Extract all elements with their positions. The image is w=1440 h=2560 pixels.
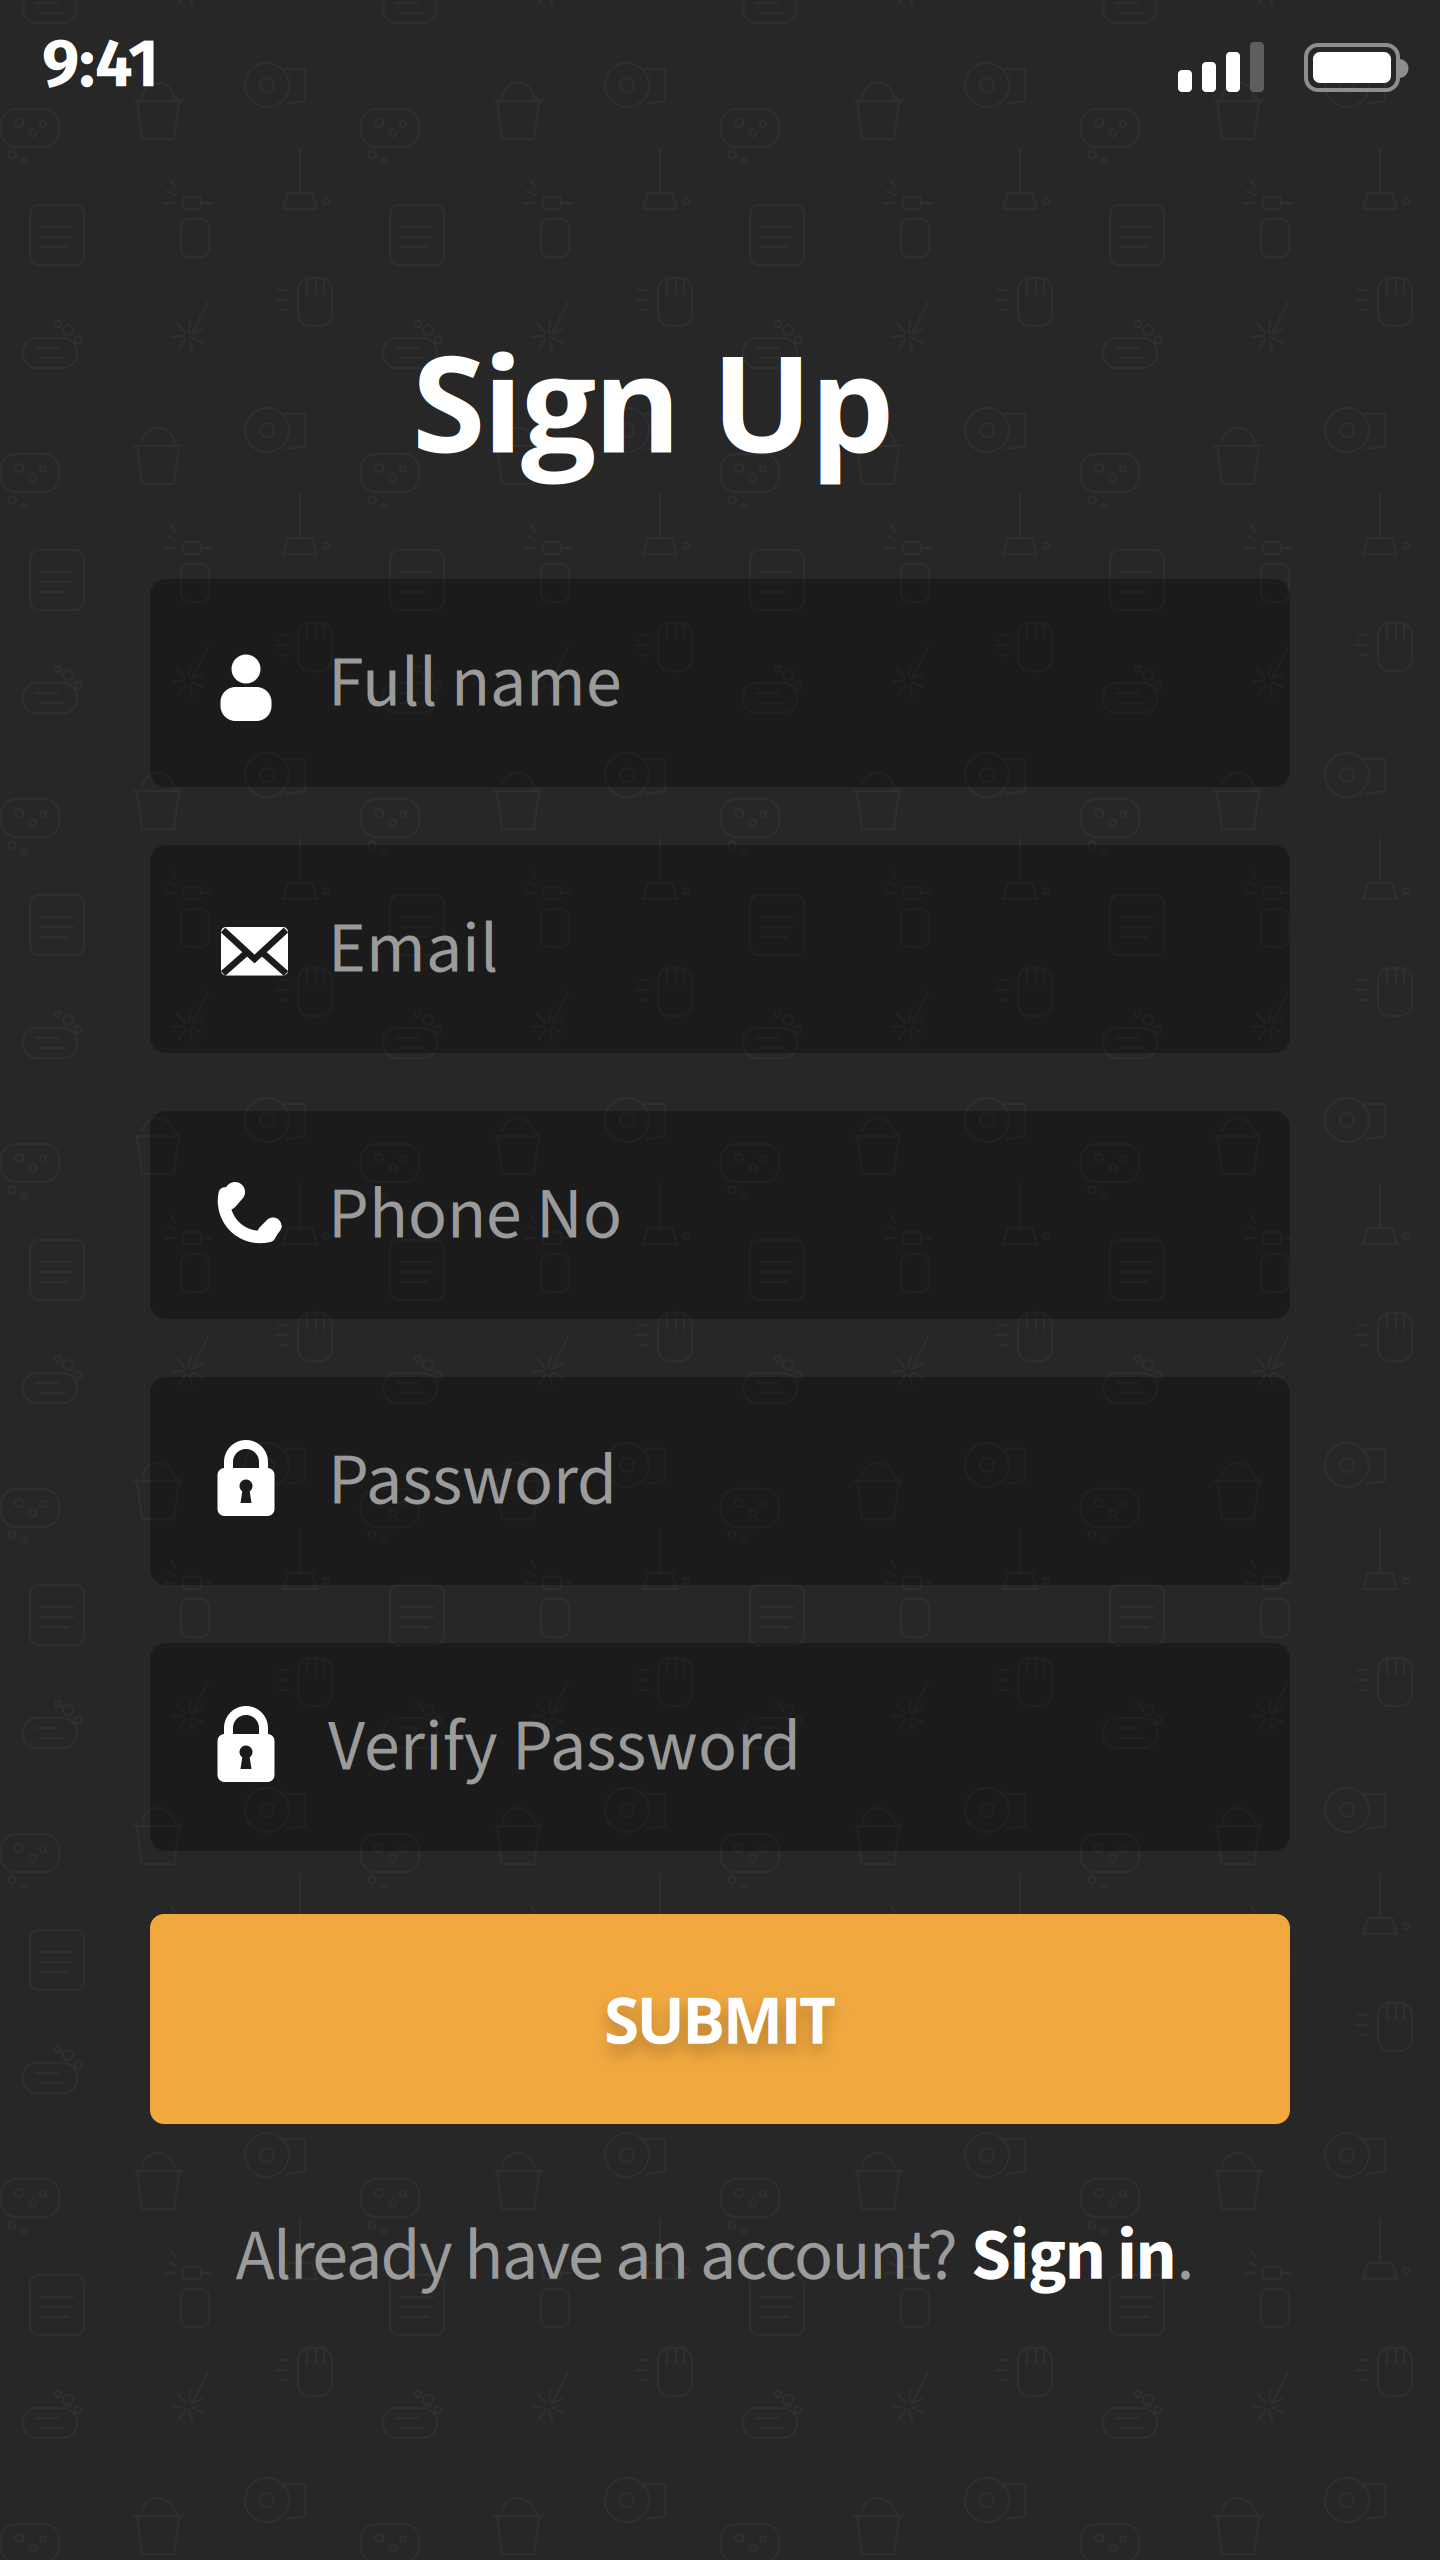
staticText: Password xyxy=(328,1430,617,1532)
button[interactable]: Verify Password xyxy=(150,1643,1290,1851)
staticText: Phone No xyxy=(328,1164,622,1266)
staticText: Full name xyxy=(328,632,622,734)
staticText: Verify Password xyxy=(328,1696,801,1798)
staticText: Email xyxy=(328,898,498,1000)
button[interactable]: Phone No xyxy=(150,1111,1290,1319)
button[interactable]: Already have an account? xyxy=(0,2205,1435,2307)
button[interactable]: Password xyxy=(150,1377,1290,1585)
staticText: SUBMIT xyxy=(604,1975,836,2063)
staticText: Sign in xyxy=(971,2205,1176,2307)
button[interactable]: Email xyxy=(150,845,1290,1053)
staticText: Already have an account? xyxy=(235,2205,971,2307)
staticText: 9:41 xyxy=(42,24,159,104)
staticText: . xyxy=(1176,2205,1194,2307)
button[interactable]: Full name xyxy=(150,579,1290,787)
staticText: Sign Up xyxy=(412,310,894,492)
button[interactable]: SUBMIT xyxy=(150,1914,1290,2124)
